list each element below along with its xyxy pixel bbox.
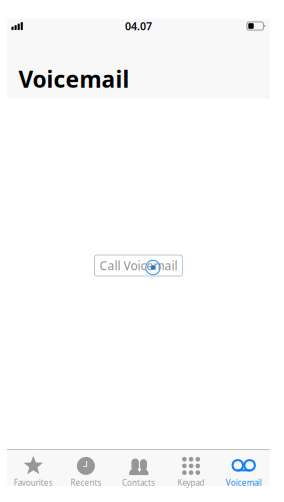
staticText: Voicemail xyxy=(18,64,129,94)
button[interactable]: Favourites xyxy=(7,450,60,486)
staticText: Favourites xyxy=(14,477,53,488)
staticText: Voicemail xyxy=(226,477,262,488)
staticText: Recents xyxy=(70,477,101,488)
staticText: Call Voicemail xyxy=(99,257,177,273)
staticText: Contacts xyxy=(122,477,155,488)
staticText: Keypad xyxy=(178,477,205,488)
button[interactable]: Recents xyxy=(60,450,112,486)
button[interactable]: Voicemail xyxy=(217,450,270,486)
staticText: 04.07 xyxy=(125,19,152,33)
button[interactable]: Call Voicemail xyxy=(94,255,182,276)
button[interactable]: Keypad xyxy=(165,450,217,486)
button[interactable]: Contacts xyxy=(112,450,165,486)
